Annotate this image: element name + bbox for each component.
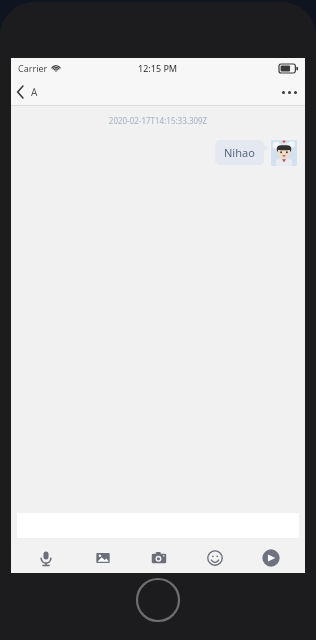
button[interactable]: Camera (131, 542, 187, 573)
button[interactable]: Home (135, 577, 181, 623)
button[interactable]: Voice message (17, 542, 74, 573)
button[interactable]: Back (11, 81, 46, 103)
button[interactable]: Send image (74, 542, 131, 573)
other: Back (17, 86, 24, 98)
staticText: Carrier (18, 62, 48, 74)
staticText: A (31, 85, 38, 99)
button[interactable]: More options (274, 85, 305, 100)
staticText: Nihao (224, 145, 255, 160)
button[interactable]: Avatar (271, 140, 297, 166)
staticText: 2020-02-17T14:15:33.309Z (11, 115, 305, 126)
staticText: 12:15 PM (138, 62, 178, 74)
button[interactable]: Send (243, 542, 299, 573)
button[interactable]: Nihao (215, 140, 264, 165)
button[interactable]: Emoji (187, 542, 243, 573)
